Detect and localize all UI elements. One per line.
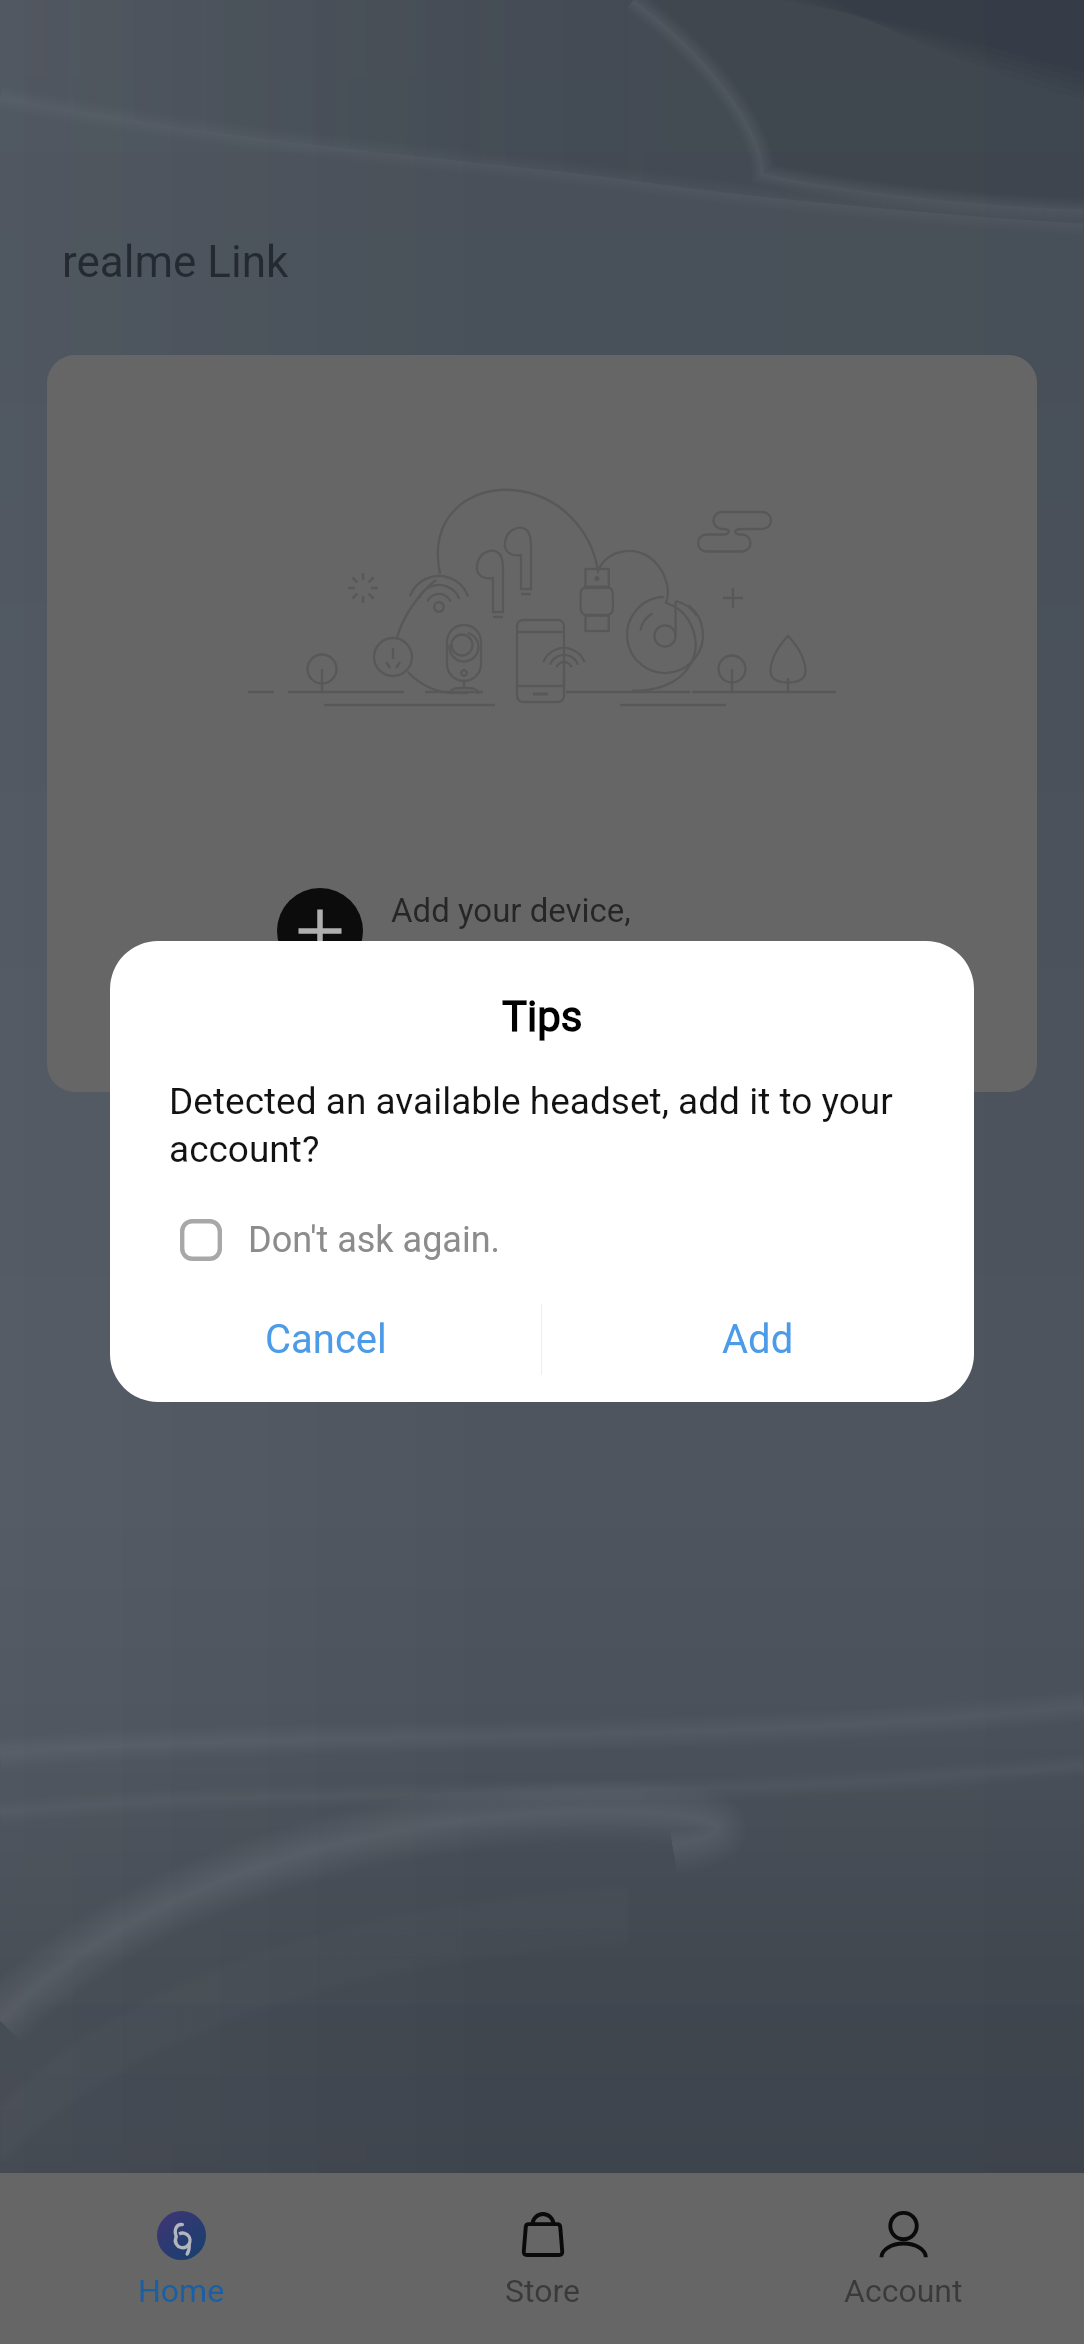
button[interactable]: Cancel: [110, 1289, 541, 1389]
button[interactable]: Account: [723, 2173, 1084, 2344]
staticText: Detected an available headset, add it to…: [169, 1080, 919, 1171]
button[interactable]: Add: [542, 1289, 974, 1389]
button[interactable]: Don't ask again.: [180, 1211, 580, 1269]
button[interactable]: Home: [0, 2173, 362, 2344]
staticText: Don't ask again.: [248, 1219, 501, 1261]
staticText: Cancel: [265, 1316, 387, 1363]
staticText: Account: [844, 2272, 963, 2310]
button[interactable]: Store: [362, 2173, 723, 2344]
staticText: Home: [138, 2272, 225, 2310]
staticText: Tips: [502, 992, 583, 1041]
staticText: realme Link: [62, 236, 289, 288]
button[interactable]: Add device: [277, 888, 363, 974]
staticText: Store: [505, 2272, 580, 2310]
button[interactable]: Add device: [47, 355, 1037, 1092]
staticText: Add: [722, 1316, 794, 1363]
staticText: Add your device,: [391, 891, 631, 930]
